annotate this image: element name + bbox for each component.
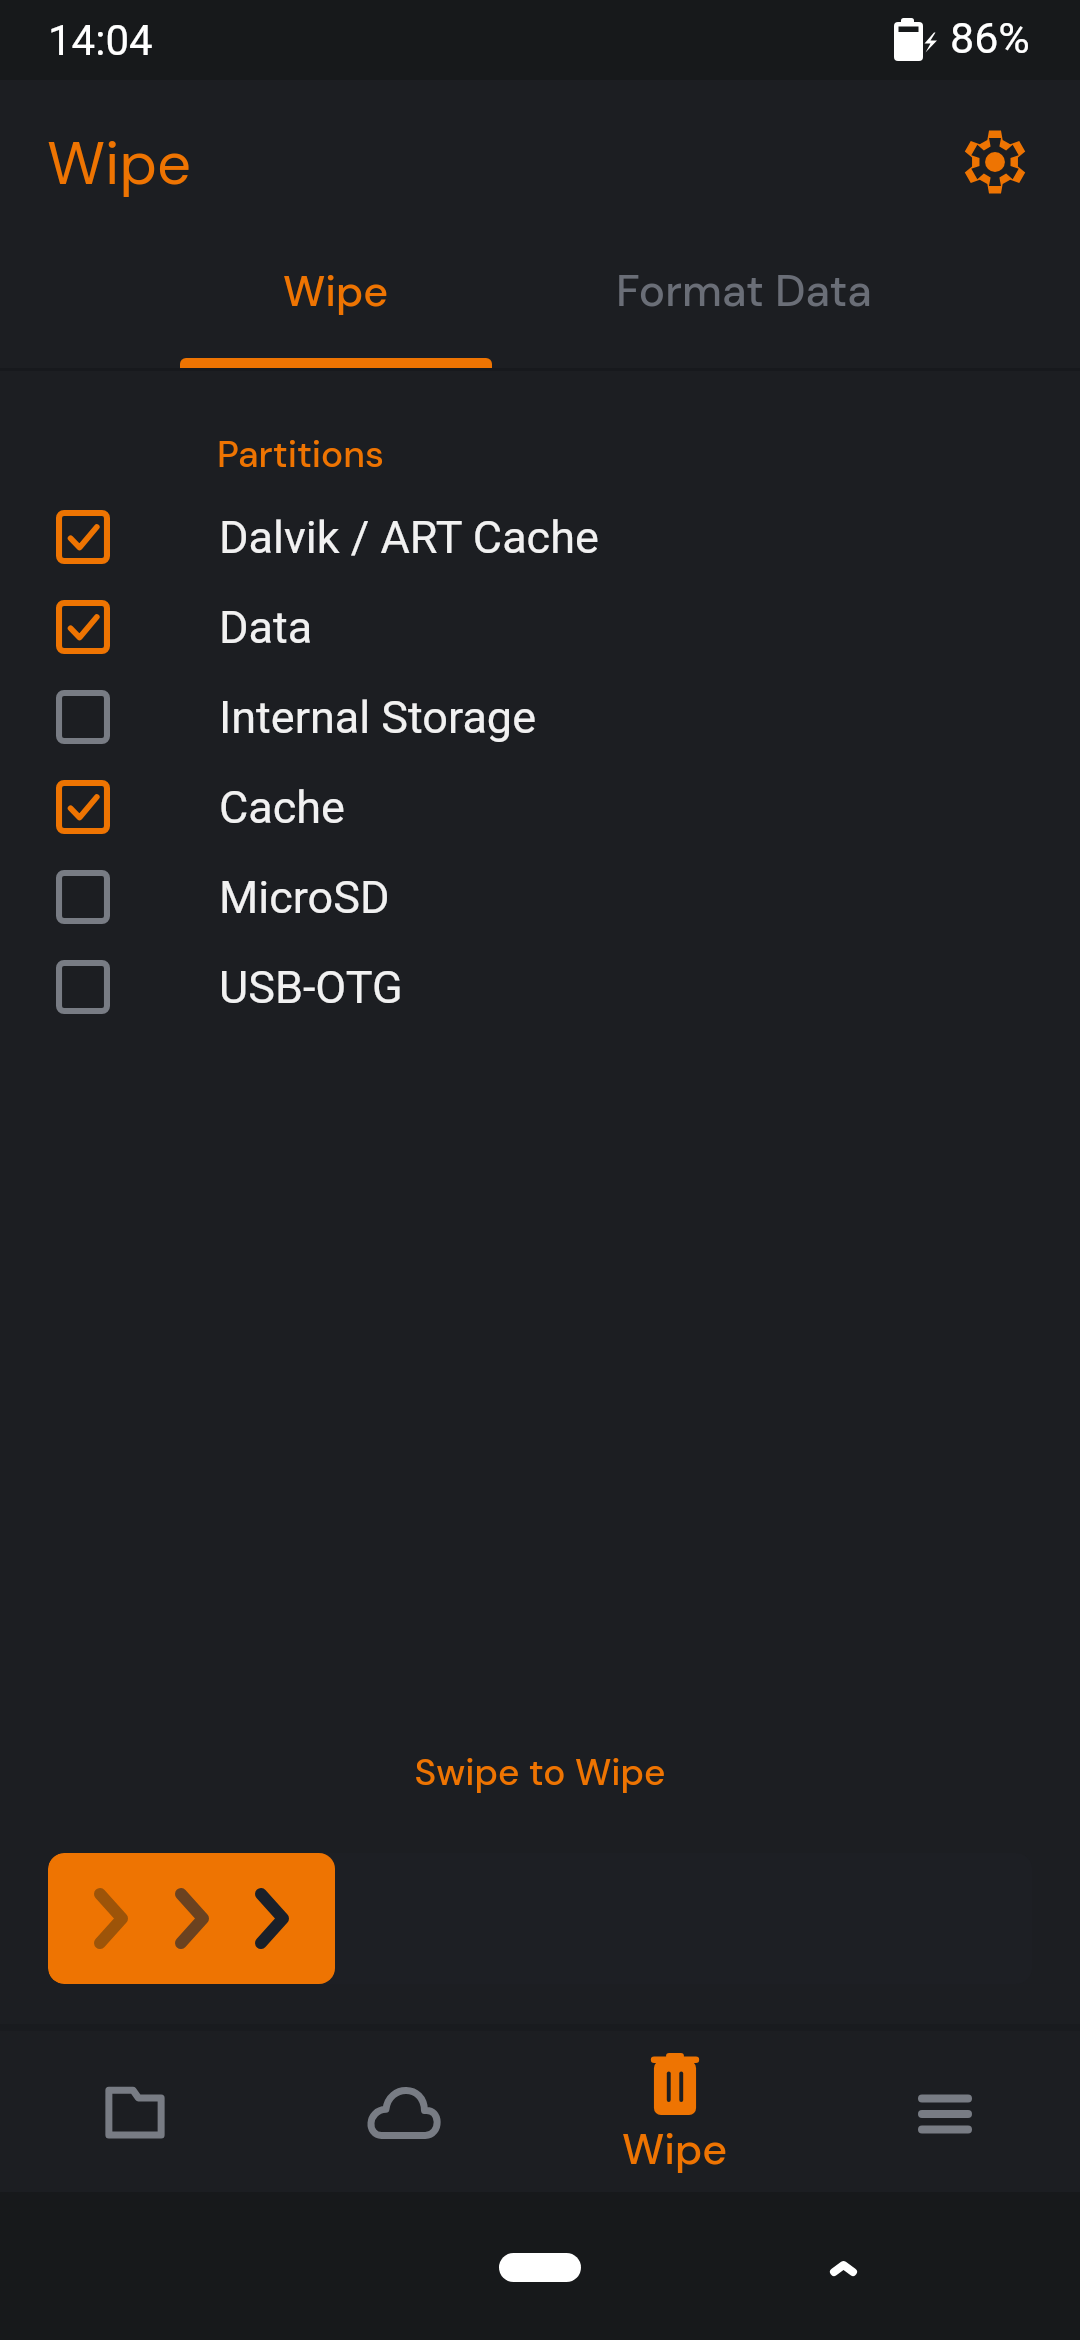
button[interactable]: USB-OTG bbox=[0, 942, 1080, 1032]
button[interactable]: Internal Storage bbox=[0, 672, 1080, 762]
staticText: MicroSD bbox=[219, 871, 390, 924]
staticText: Internal Storage bbox=[219, 691, 536, 744]
staticText: Cache bbox=[219, 781, 345, 834]
button[interactable]: Wipe bbox=[540, 2031, 810, 2192]
button[interactable]: Wipe bbox=[180, 235, 492, 370]
staticText: Wipe bbox=[47, 124, 192, 202]
staticText: USB-OTG bbox=[219, 961, 403, 1014]
button[interactable]: Backup bbox=[270, 2031, 540, 2192]
button[interactable]: Cache bbox=[0, 762, 1080, 852]
staticText: Swipe to Wipe bbox=[0, 1748, 1080, 1796]
staticText: 14:04 bbox=[48, 16, 153, 65]
button[interactable]: Settings bbox=[947, 114, 1043, 210]
button[interactable]: Dalvik / ART Cache bbox=[0, 492, 1080, 582]
staticText: Partitions bbox=[217, 430, 384, 478]
staticText: Data bbox=[219, 601, 313, 654]
staticText: Wipe bbox=[283, 263, 389, 319]
button[interactable]: Files bbox=[0, 2031, 270, 2192]
button[interactable] bbox=[48, 1853, 1032, 1984]
staticText: 86% bbox=[950, 13, 1030, 63]
button[interactable]: Data bbox=[0, 582, 1080, 672]
button[interactable]: Keyboard hide bbox=[830, 2261, 857, 2281]
staticText: Wipe bbox=[622, 2121, 728, 2177]
button[interactable]: MicroSD bbox=[0, 852, 1080, 942]
staticText: Format Data bbox=[616, 262, 872, 319]
button[interactable]: Home bbox=[499, 2253, 581, 2282]
button[interactable]: Format Data bbox=[492, 235, 996, 370]
button[interactable]: Menu bbox=[810, 2031, 1080, 2192]
staticText: Dalvik / ART Cache bbox=[219, 511, 599, 564]
